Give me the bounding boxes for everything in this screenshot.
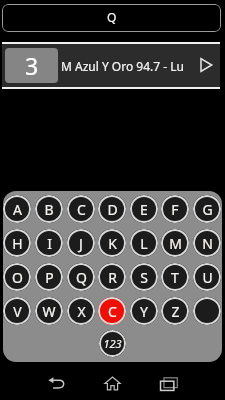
staticText: I: [47, 234, 52, 253]
button[interactable]: I: [35, 229, 63, 257]
button[interactable]: O: [3, 263, 31, 291]
staticText: P: [45, 268, 54, 287]
staticText: C: [108, 302, 117, 321]
button[interactable]: E: [130, 195, 158, 223]
button[interactable]: 3: [2, 44, 220, 87]
staticText: G: [202, 200, 213, 219]
button[interactable]: V: [3, 297, 31, 325]
button[interactable]: L: [130, 229, 158, 257]
button[interactable]: Z: [161, 297, 189, 325]
staticText: 3: [25, 50, 39, 81]
button[interactable]: Q: [67, 263, 95, 291]
button[interactable]: T: [161, 263, 189, 291]
button[interactable]: Home: [84, 366, 141, 398]
button[interactable]: Y: [130, 297, 158, 325]
staticText: L: [140, 234, 148, 253]
staticText: B: [44, 200, 54, 219]
staticText: N: [202, 234, 213, 253]
button[interactable]: J: [67, 229, 95, 257]
staticText: O: [12, 268, 23, 287]
button[interactable]: Q: [2, 4, 221, 32]
staticText: Y: [140, 302, 148, 321]
button[interactable]: R: [98, 263, 126, 291]
staticText: H: [12, 234, 23, 253]
staticText: C: [77, 200, 86, 219]
staticText: Q: [76, 268, 87, 287]
button[interactable]: 123: [99, 330, 126, 357]
staticText: Z: [171, 302, 180, 321]
staticText: S: [140, 268, 148, 287]
button[interactable]: X: [67, 297, 95, 325]
staticText: M: [169, 234, 182, 253]
button[interactable]: C: [98, 297, 126, 325]
staticText: K: [108, 234, 117, 253]
staticText: J: [79, 234, 83, 253]
button[interactable]: D: [98, 195, 126, 223]
button[interactable]: U: [193, 263, 221, 291]
staticText: 123: [103, 336, 122, 351]
staticText: X: [77, 302, 86, 321]
staticText: M Azul Y Oro 94.7 - Lu: [61, 58, 184, 74]
staticText: U: [202, 268, 213, 287]
staticText: D: [107, 200, 118, 219]
staticText: Q: [107, 9, 117, 25]
button[interactable]: M: [161, 229, 189, 257]
button[interactable]: Back: [28, 366, 84, 398]
button[interactable]: B: [35, 195, 63, 223]
button[interactable]: Recents: [141, 366, 197, 398]
button[interactable]: Play: [192, 52, 218, 78]
button[interactable]: P: [35, 263, 63, 291]
staticText: F: [171, 200, 179, 219]
staticText: A: [13, 200, 22, 219]
button[interactable]: A: [3, 195, 31, 223]
button[interactable]: K: [98, 229, 126, 257]
staticText: V: [13, 302, 22, 321]
button[interactable]: N: [193, 229, 221, 257]
button[interactable]: F: [161, 195, 189, 223]
staticText: R: [108, 268, 117, 287]
button[interactable]: [193, 297, 221, 325]
button[interactable]: C: [67, 195, 95, 223]
staticText: T: [171, 268, 179, 287]
button[interactable]: S: [130, 263, 158, 291]
button[interactable]: G: [193, 195, 221, 223]
staticText: W: [42, 302, 56, 321]
staticText: E: [140, 200, 148, 219]
button[interactable]: W: [35, 297, 63, 325]
button[interactable]: H: [3, 229, 31, 257]
